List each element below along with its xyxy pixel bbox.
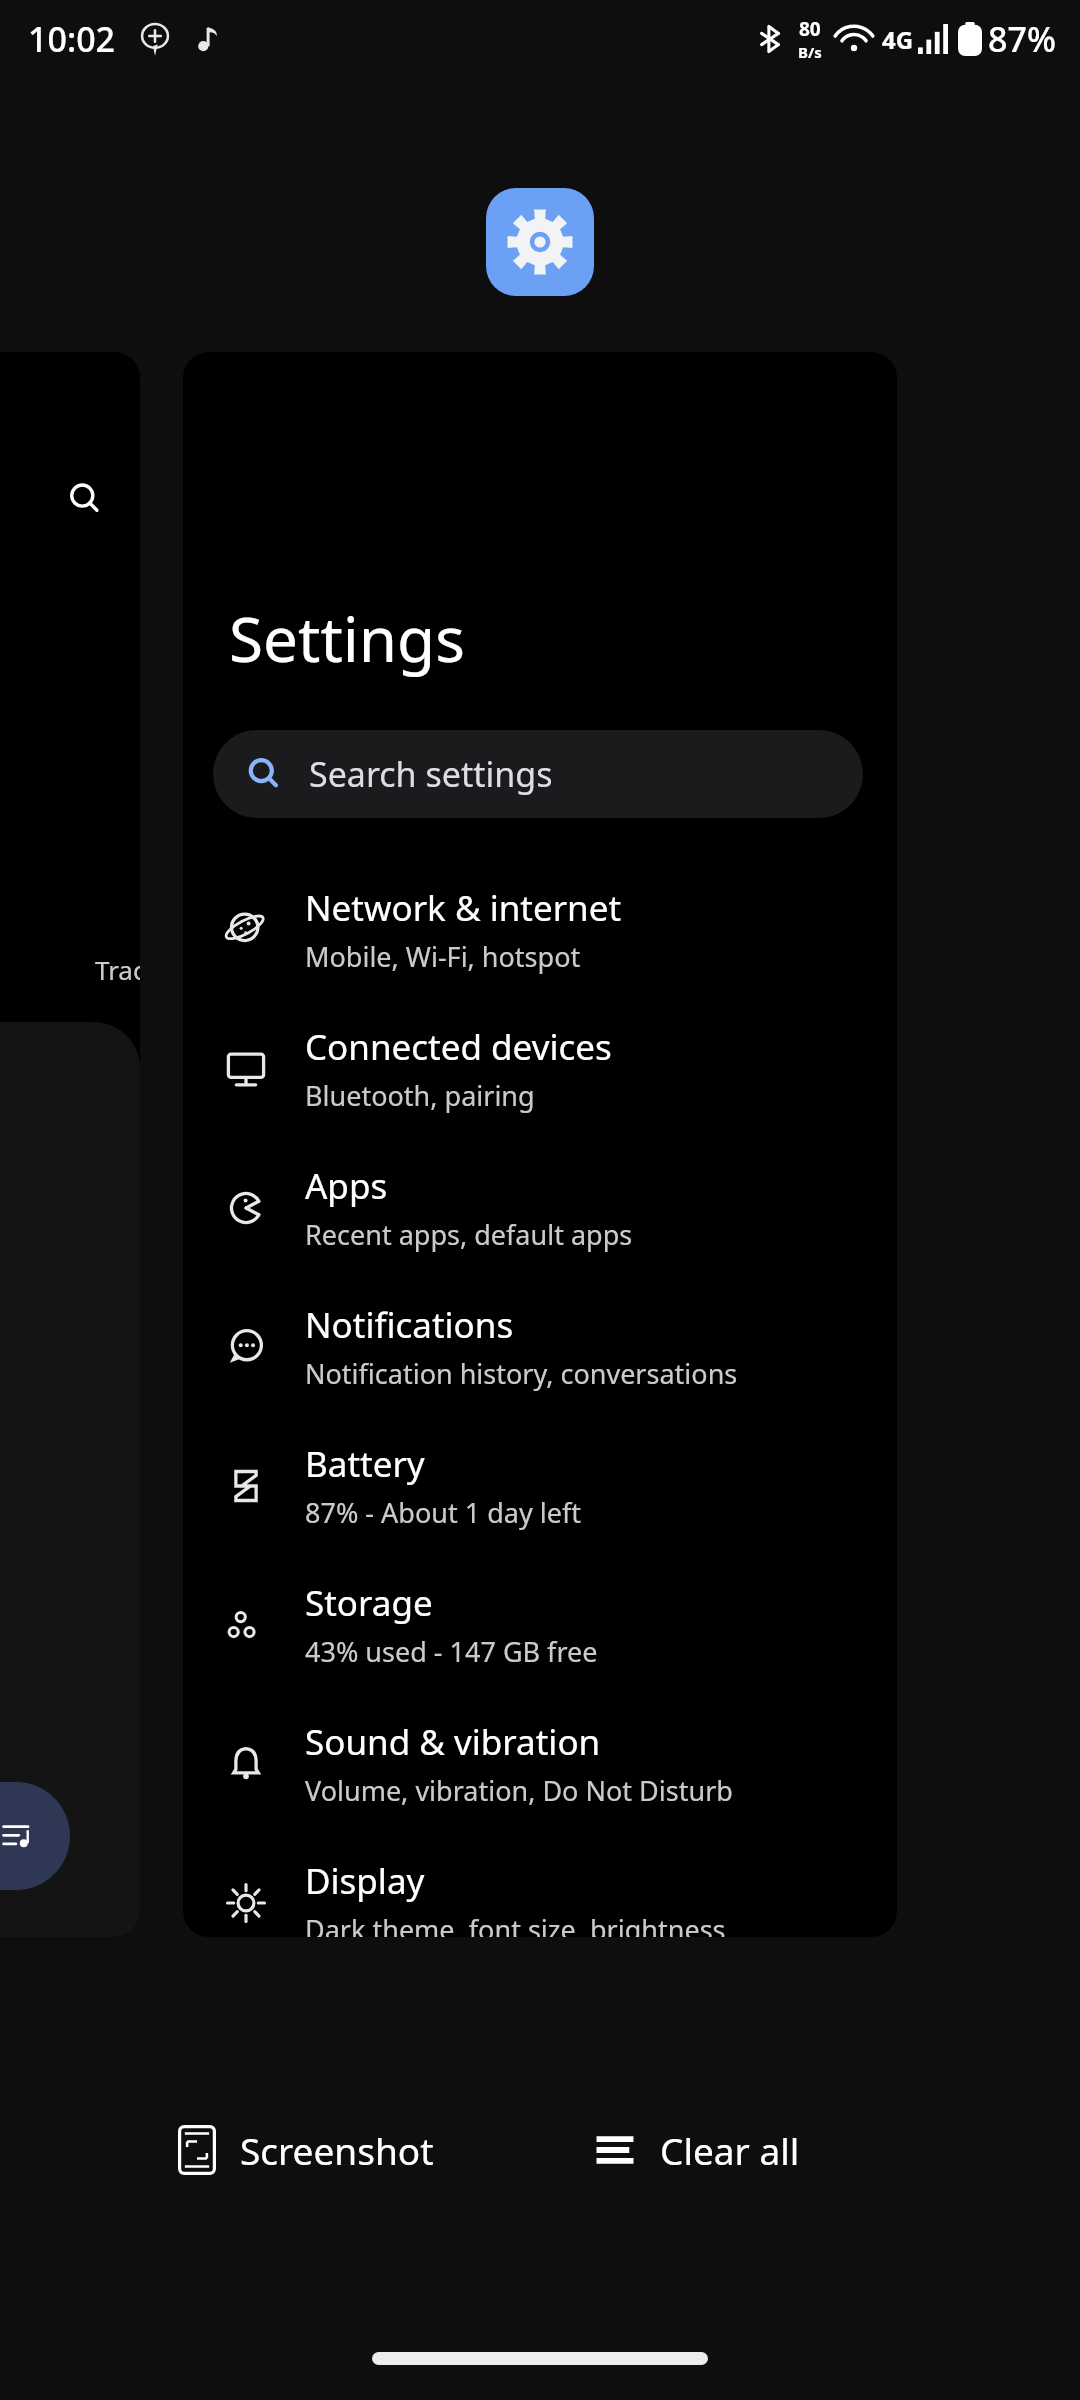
staticText: Sound & vibration [305,1718,601,1766]
button[interactable]: Sound & vibration [183,1694,897,1833]
button[interactable]: Display [183,1833,897,1937]
staticText: 10:02 [28,16,116,62]
staticText: B/s [798,42,822,62]
staticText: Clear all [660,2125,800,2175]
button[interactable]: Apps [183,1138,897,1277]
button[interactable]: Screenshot [168,2115,444,2185]
staticText: Volume, vibration, Do Not Disturb [305,1772,733,1809]
button[interactable]: Network & internet [183,860,897,999]
staticText: Notifications [305,1301,514,1349]
button[interactable]: Notifications [183,1277,897,1416]
staticText: Tracks [95,952,140,987]
staticText: Bluetooth, pairing [305,1077,535,1114]
button[interactable]: Music app recent task [0,352,140,1937]
staticText: Recent apps, default apps [305,1216,633,1253]
button[interactable]: Settings app [486,188,594,296]
staticText: Display [305,1857,425,1905]
staticText: Screenshot [240,2125,434,2175]
staticText: 87% [988,16,1056,62]
staticText: Dark theme, font size, brightness [305,1911,726,1937]
button[interactable]: Search settings [213,730,863,818]
button[interactable]: Clear all [584,2115,810,2185]
button[interactable]: Battery [183,1416,897,1555]
staticText: Connected devices [305,1023,612,1071]
staticText: 4G [882,23,914,56]
button[interactable]: Storage [183,1555,897,1694]
staticText: Settings [229,596,465,680]
staticText: Battery [305,1440,425,1488]
staticText: Network & internet [305,884,622,932]
staticText: Storage [305,1579,433,1627]
staticText: Mobile, Wi-Fi, hotspot [305,938,581,975]
staticText: 87% - About 1 day left [305,1494,581,1531]
staticText: 80 [799,16,821,42]
staticText: Apps [305,1162,388,1210]
staticText: Notification history, conversations [305,1355,738,1392]
button[interactable]: Player controls [0,1782,70,1890]
staticText: 43% used - 147 GB free [305,1633,598,1670]
button[interactable]: Connected devices [183,999,897,1138]
staticText: Search settings [309,751,553,797]
